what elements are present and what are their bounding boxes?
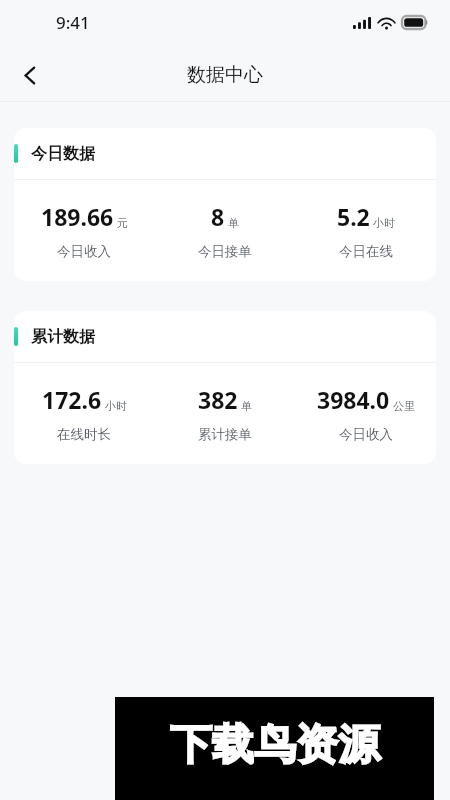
staticText: 小时: [105, 399, 127, 413]
staticText: 元: [117, 216, 128, 230]
staticText: 今日收入: [57, 243, 111, 260]
staticText: 累计数据: [31, 327, 95, 347]
staticText: 189.66: [41, 201, 114, 232]
staticText: 382: [198, 384, 238, 415]
button[interactable]: 5.2: [295, 201, 436, 260]
staticText: 下载鸟资源: [170, 719, 380, 772]
staticText: 3984.0: [317, 384, 390, 415]
staticText: 8: [211, 201, 225, 232]
button[interactable]: 8: [154, 201, 295, 260]
button[interactable]: 382: [154, 384, 295, 443]
staticText: 公里: [393, 399, 415, 413]
staticText: 5.2: [337, 201, 370, 232]
button[interactable]: 172.6: [14, 384, 154, 443]
staticText: 9:41: [56, 11, 90, 34]
button[interactable]: 累计数据: [14, 311, 436, 464]
staticText: 今日接单: [198, 243, 252, 260]
staticText: 在线时长: [57, 426, 111, 443]
staticText: 今日收入: [339, 426, 393, 443]
staticText: 今日数据: [31, 144, 95, 164]
staticText: 单: [241, 399, 252, 413]
staticText: 单: [228, 216, 239, 230]
staticText: 累计接单: [198, 426, 252, 443]
button[interactable]: Back: [6, 52, 52, 98]
staticText: 今日在线: [339, 243, 393, 260]
button[interactable]: 今日数据: [14, 128, 436, 281]
staticText: 数据中心: [187, 63, 263, 87]
staticText: 小时: [373, 216, 395, 230]
button[interactable]: 189.66: [14, 201, 154, 260]
staticText: 172.6: [42, 384, 102, 415]
button[interactable]: 3984.0: [295, 384, 436, 443]
